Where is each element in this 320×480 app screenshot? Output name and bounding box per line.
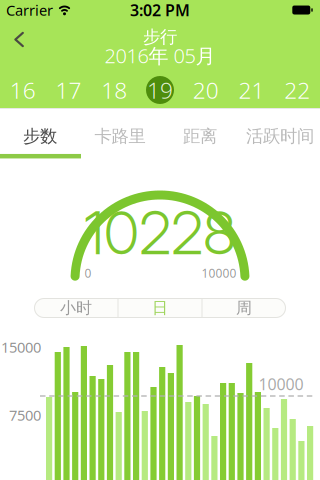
- button[interactable]: 周: [202, 298, 286, 318]
- staticText: 21: [238, 75, 264, 105]
- button[interactable]: 19: [137, 66, 183, 108]
- staticText: 16: [10, 75, 36, 105]
- button[interactable]: 22: [274, 66, 320, 108]
- button[interactable]: 18: [91, 66, 137, 108]
- button[interactable]: 21: [229, 66, 274, 108]
- button[interactable]: [13, 30, 25, 48]
- button[interactable]: 卡路里: [80, 111, 160, 161]
- button[interactable]: 距离: [160, 111, 240, 161]
- staticText: 22: [284, 75, 310, 105]
- staticText: 距离: [183, 126, 217, 147]
- staticText: 10000: [201, 265, 236, 281]
- button[interactable]: 活跃时间: [240, 111, 320, 161]
- staticText: 卡路里: [94, 126, 145, 147]
- staticText: Carrier: [6, 0, 53, 20]
- staticText: 10228: [84, 197, 236, 268]
- staticText: 19: [147, 75, 173, 105]
- button[interactable]: 小时: [34, 298, 118, 318]
- staticText: 15000: [1, 337, 41, 357]
- button[interactable]: 日: [118, 298, 202, 318]
- staticText: 小时: [60, 298, 92, 318]
- staticText: 10000: [258, 373, 303, 395]
- staticText: 7500: [9, 405, 41, 425]
- staticText: 步数: [23, 126, 57, 147]
- staticText: 17: [56, 75, 82, 105]
- button[interactable]: 16: [0, 66, 46, 108]
- button[interactable]: 20: [183, 66, 229, 108]
- button[interactable]: 步数: [0, 111, 80, 161]
- staticText: 20: [193, 75, 219, 105]
- staticText: 周: [236, 298, 252, 318]
- staticText: 步行: [143, 26, 177, 48]
- staticText: 18: [101, 75, 127, 105]
- button[interactable]: 17: [46, 66, 91, 108]
- staticText: 3:02 PM: [130, 0, 190, 21]
- staticText: 日: [152, 298, 168, 318]
- staticText: 0: [84, 265, 91, 281]
- staticText: 2016年 05月: [104, 42, 215, 69]
- staticText: 活跃时间: [246, 126, 314, 147]
